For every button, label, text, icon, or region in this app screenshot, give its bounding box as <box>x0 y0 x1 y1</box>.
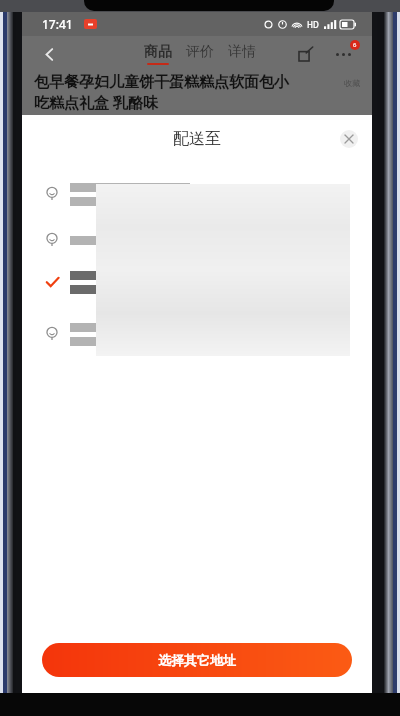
button[interactable] <box>42 317 352 351</box>
staticText: 17:41 <box>42 16 73 32</box>
button[interactable]: Back <box>32 37 66 71</box>
button[interactable]: Share <box>292 40 320 68</box>
staticText: 商品 <box>144 43 172 61</box>
button[interactable]: 选择其它地址 <box>42 643 352 677</box>
button[interactable] <box>42 229 352 251</box>
staticText: 收藏 <box>344 78 360 88</box>
button[interactable]: 评价 <box>186 43 214 61</box>
button[interactable]: 商品 <box>144 43 172 65</box>
button[interactable]: 详情 <box>228 43 256 61</box>
staticText: 6 <box>353 41 357 49</box>
button[interactable]: Close <box>340 130 358 148</box>
staticText: 吃糕点礼盒 乳酪味 <box>34 92 158 112</box>
button[interactable] <box>42 177 352 211</box>
staticText: 配送至 <box>173 129 221 149</box>
staticText: HD <box>307 19 319 30</box>
button[interactable] <box>42 265 352 299</box>
staticText: 选择其它地址 <box>158 652 236 668</box>
staticText: 包早餐孕妇儿童饼干蛋糕糕点软面包小 <box>34 73 344 92</box>
button[interactable]: More options <box>328 39 358 69</box>
